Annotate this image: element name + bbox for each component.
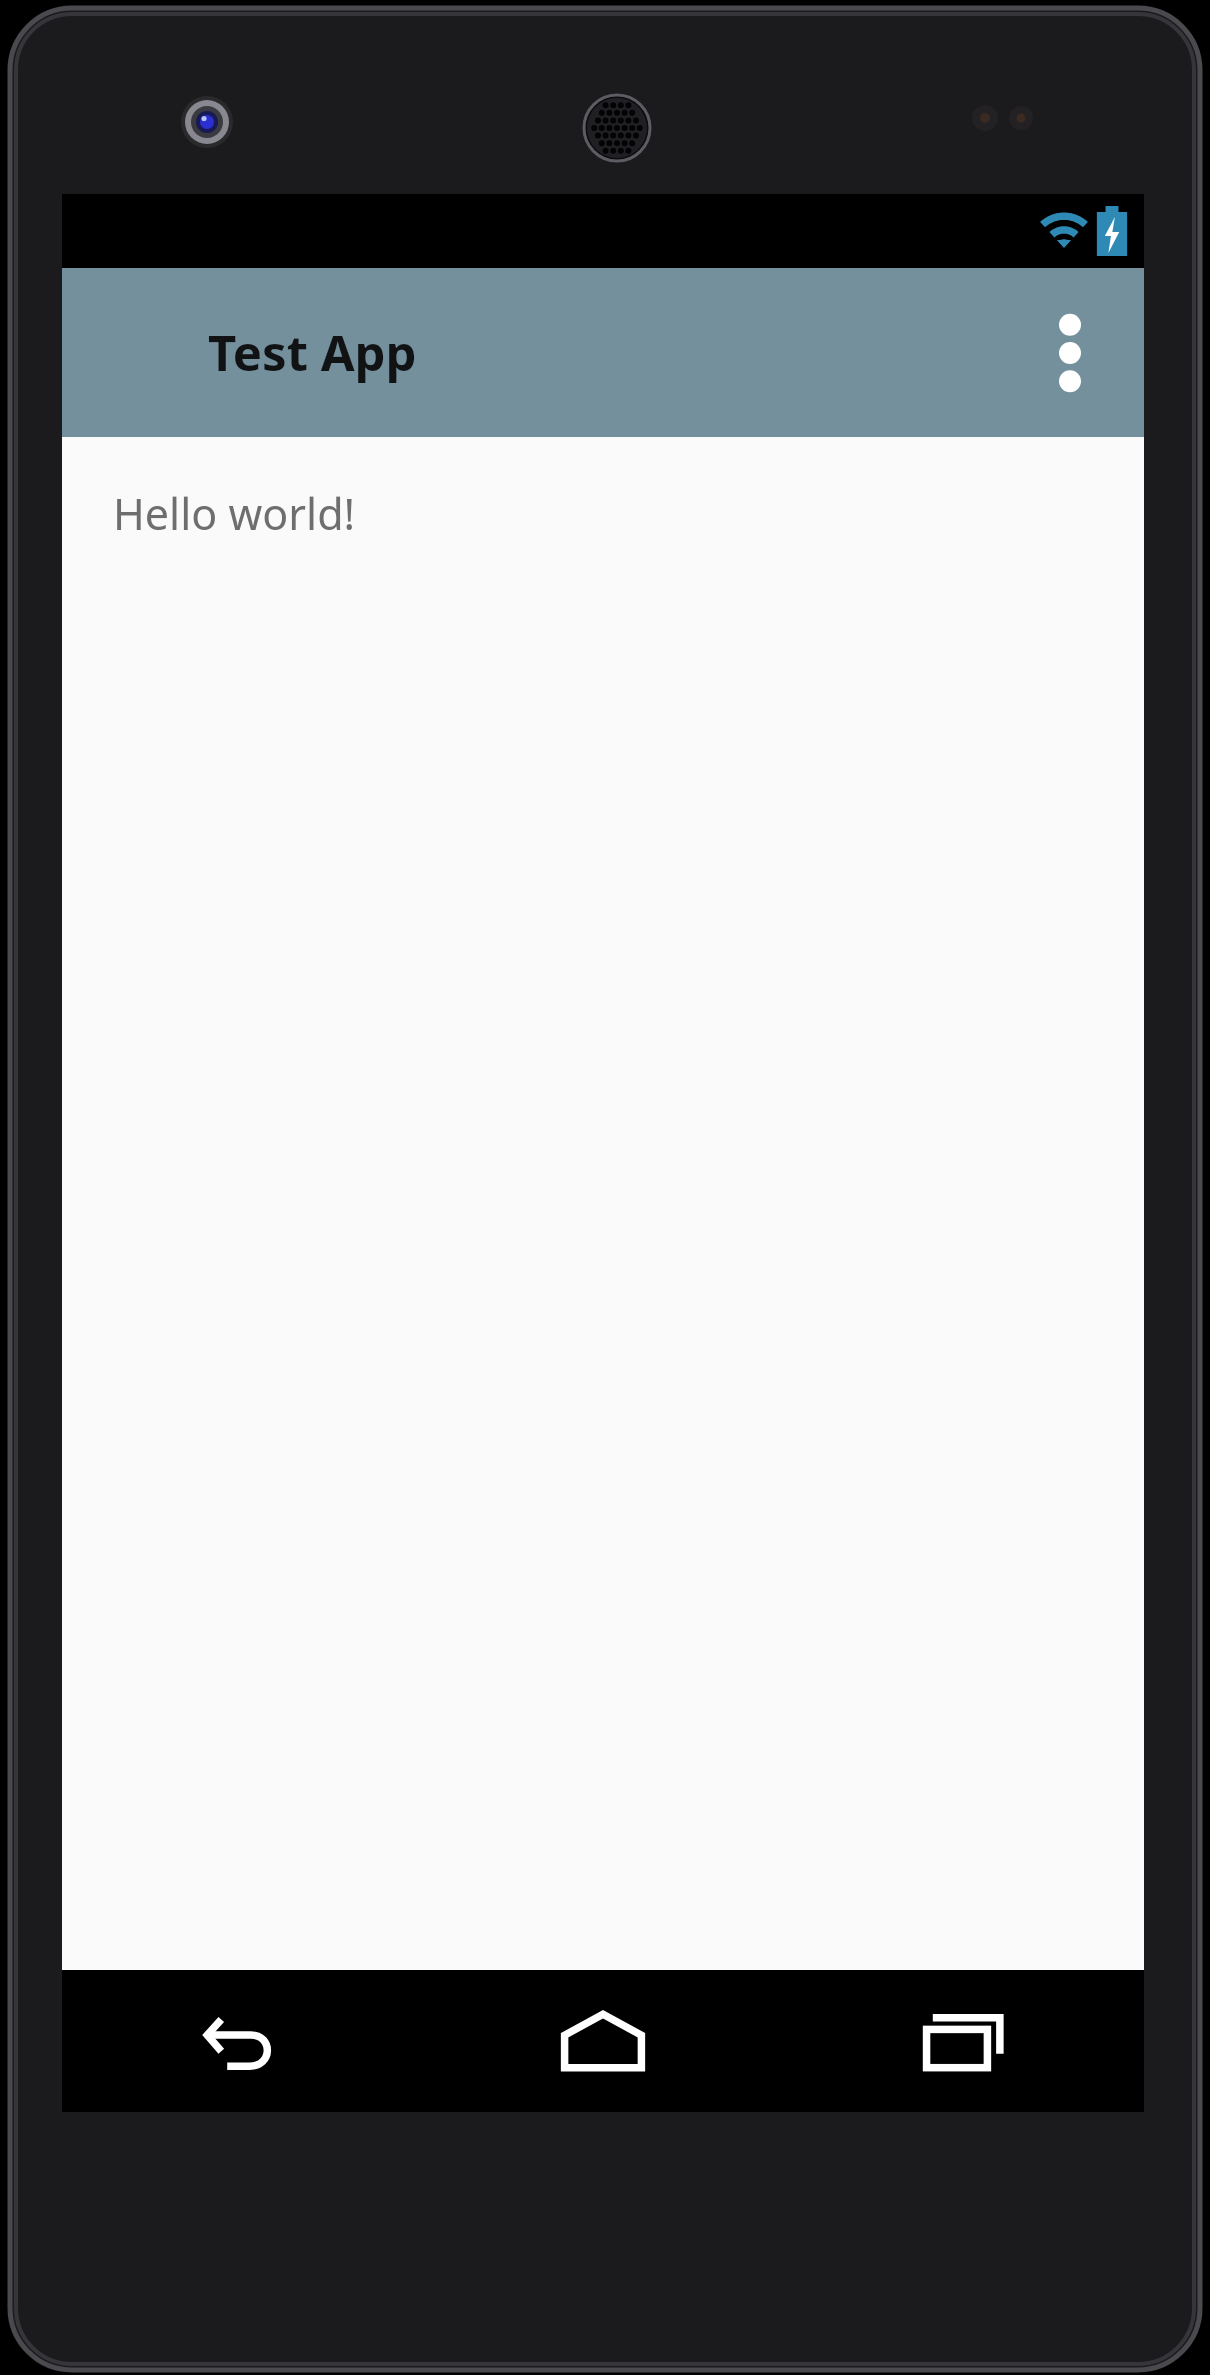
button[interactable]: Back xyxy=(62,1970,422,2112)
staticText: Test App xyxy=(208,319,417,386)
button[interactable]: Recent apps xyxy=(783,1970,1144,2112)
button[interactable]: More options xyxy=(1022,288,1118,418)
button[interactable]: Home xyxy=(422,1970,783,2112)
staticText: Hello world! xyxy=(113,484,356,543)
